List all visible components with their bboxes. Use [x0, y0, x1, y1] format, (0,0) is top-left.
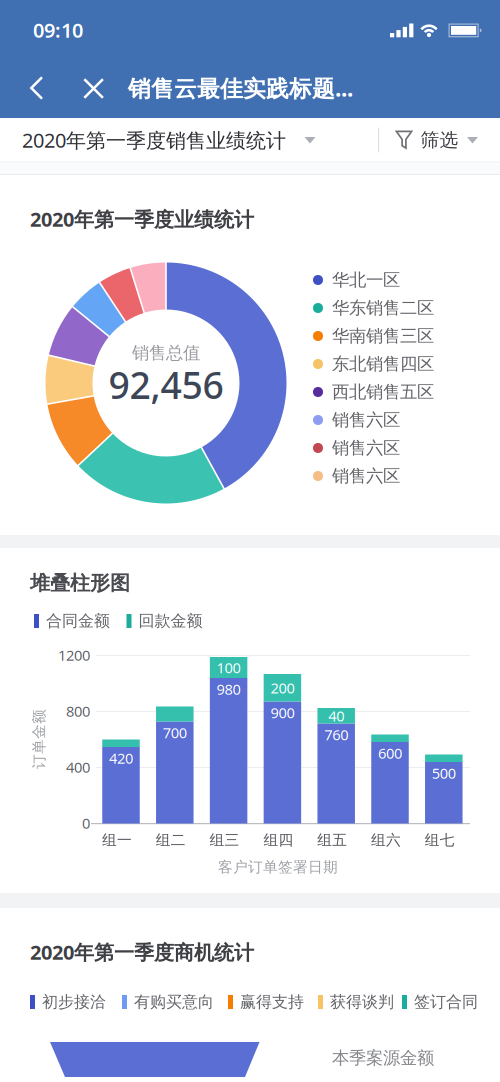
staticText: 2020年第一季度商机统计 — [30, 939, 254, 965]
staticText: 2020年第一季度业绩统计 — [30, 206, 254, 232]
staticText: 华东销售二区 — [332, 297, 434, 319]
staticText: 组二 — [156, 831, 186, 849]
staticText: 西北销售五区 — [332, 381, 434, 403]
button[interactable]: 筛选 — [395, 128, 478, 151]
staticText: 初步接洽 — [42, 992, 106, 1012]
staticText: 500 — [432, 763, 456, 783]
staticText: 华南销售三区 — [332, 325, 434, 347]
staticText: 0 — [82, 813, 90, 833]
staticText: 700 — [163, 723, 187, 742]
staticText: 600 — [378, 743, 402, 763]
staticText: 2020年第一季度销售业绩统计 — [22, 127, 286, 153]
staticText: 900 — [270, 703, 294, 722]
staticText: 400 — [66, 757, 90, 777]
button[interactable]: 2020年第一季度销售业绩统计 — [22, 127, 362, 153]
staticText: 40 — [328, 706, 344, 725]
staticText: 华北一区 — [332, 269, 400, 291]
staticText: 组四 — [263, 831, 293, 849]
staticText: 组六 — [371, 831, 401, 849]
staticText: 客户订单签署日期 — [218, 858, 338, 876]
staticText: 销售总值 — [132, 342, 200, 364]
staticText: 回款金额 — [138, 611, 202, 631]
staticText: 100 — [217, 658, 241, 677]
staticText: 堆叠柱形图 — [30, 571, 130, 595]
staticText: 92,456 — [108, 360, 223, 409]
staticText: 09:10 — [33, 17, 83, 43]
staticText: 420 — [109, 748, 133, 768]
staticText: 订单金额 — [9, 730, 69, 748]
staticText: 合同金额 — [46, 611, 110, 631]
staticText: 800 — [66, 701, 90, 721]
staticText: 筛选 — [420, 128, 458, 151]
staticText: 本季案源金额 — [332, 1047, 434, 1069]
staticText: 有购买意向 — [134, 992, 214, 1012]
staticText: 东北销售四区 — [332, 353, 434, 375]
staticText: 赢得支持 — [240, 992, 304, 1012]
staticText: 760 — [324, 725, 348, 744]
staticText: 组七 — [425, 831, 455, 849]
staticText: 销售六区 — [332, 409, 400, 431]
staticText: 获得谈判 — [330, 992, 394, 1012]
staticText: 签订合同 — [414, 992, 478, 1012]
staticText: 980 — [217, 679, 241, 699]
staticText: 销售六区 — [332, 437, 400, 459]
staticText: 组三 — [210, 831, 240, 849]
staticText: 组五 — [317, 831, 347, 849]
staticText: 200 — [270, 678, 294, 697]
staticText: 组一 — [102, 831, 132, 849]
button[interactable]: Back — [16, 66, 56, 110]
staticText: 1200 — [58, 645, 90, 665]
staticText: 销售六区 — [332, 465, 400, 487]
button[interactable]: Close — [72, 66, 116, 110]
staticText: 销售云最佳实践标题... — [128, 73, 353, 103]
